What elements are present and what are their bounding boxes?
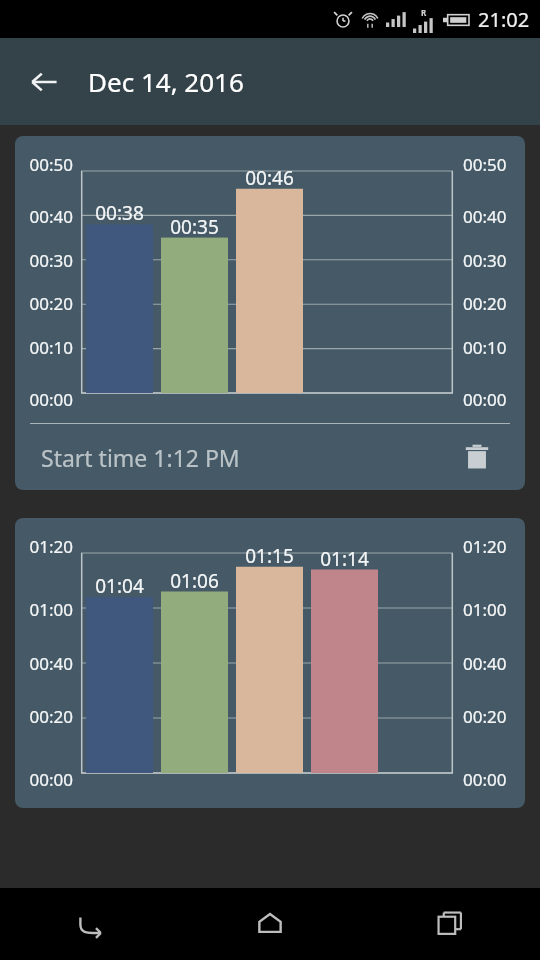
staticText: 00:38 (86, 200, 153, 226)
button[interactable]: Recent apps (360, 888, 540, 960)
staticText: 00:10 (463, 336, 525, 359)
button[interactable]: 00:50 (15, 136, 525, 490)
staticText: 00:20 (463, 705, 525, 728)
staticText: 01:20 (463, 535, 525, 558)
button[interactable]: Home (180, 888, 360, 960)
staticText: 00:10 (15, 336, 73, 359)
staticText: 00:40 (15, 652, 73, 675)
staticText: 00:40 (15, 205, 73, 228)
staticText: 00:00 (15, 768, 73, 791)
staticText: 01:00 (15, 598, 73, 621)
staticText: 00:30 (463, 249, 525, 272)
staticText: 01:06 (161, 568, 228, 594)
staticText: 00:50 (463, 153, 525, 176)
staticText: 01:04 (86, 573, 153, 599)
staticText: 01:00 (463, 598, 525, 621)
button[interactable]: Back (16, 54, 72, 110)
staticText: 00:50 (15, 153, 73, 176)
staticText: 00:00 (15, 388, 73, 411)
staticText: Start time 1:12 PM (41, 442, 240, 473)
staticText: 00:20 (15, 292, 73, 315)
staticText: 00:00 (463, 388, 525, 411)
staticText: 00:00 (463, 768, 525, 791)
staticText: Dec 14, 2016 (88, 64, 244, 99)
staticText: 00:46 (236, 165, 303, 191)
staticText: 00:40 (463, 205, 525, 228)
staticText: 01:20 (15, 535, 73, 558)
staticText: 01:15 (236, 543, 303, 569)
staticText: 01:14 (311, 546, 378, 572)
staticText: 00:40 (463, 652, 525, 675)
staticText: 00:20 (463, 292, 525, 315)
staticText: 00:35 (161, 214, 228, 240)
button[interactable]: Back (0, 888, 180, 960)
staticText: 00:30 (15, 249, 73, 272)
staticText: 21:02 (478, 6, 530, 33)
staticText: R (421, 7, 427, 18)
button[interactable]: Delete (455, 435, 499, 479)
button[interactable]: 01:20 (15, 518, 525, 808)
staticText: 00:20 (15, 705, 73, 728)
